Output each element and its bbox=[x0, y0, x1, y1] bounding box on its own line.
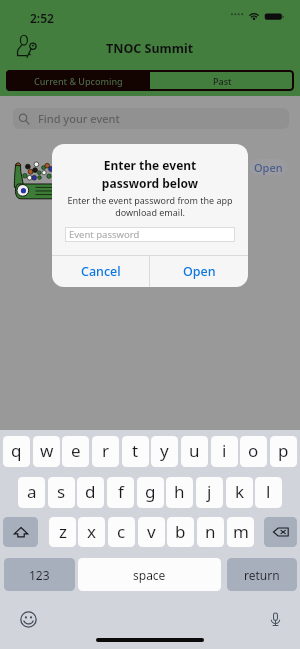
button[interactable]: p bbox=[270, 436, 297, 467]
staticText: c bbox=[117, 520, 126, 543]
staticText: TNOC Summit bbox=[106, 40, 194, 57]
staticText: Current & Upcoming bbox=[34, 75, 123, 87]
staticText: r bbox=[102, 439, 110, 462]
button[interactable]: Backspace bbox=[264, 517, 297, 547]
staticText: k bbox=[235, 480, 245, 503]
staticText: return bbox=[244, 567, 280, 583]
staticText: j bbox=[207, 480, 212, 503]
staticText: e bbox=[71, 439, 81, 462]
button[interactable]: m bbox=[227, 517, 254, 547]
staticText: n bbox=[205, 520, 216, 543]
button[interactable]: q bbox=[3, 436, 30, 467]
button[interactable]: x bbox=[78, 517, 105, 547]
button[interactable]: f bbox=[107, 477, 134, 508]
button[interactable]: w bbox=[33, 436, 60, 467]
button[interactable]: u bbox=[181, 436, 208, 467]
staticText: w bbox=[40, 439, 54, 462]
staticText: 123 bbox=[29, 567, 50, 583]
staticText: f bbox=[118, 480, 124, 503]
staticText: v bbox=[147, 520, 156, 543]
staticText: d bbox=[85, 480, 96, 503]
button[interactable]: Cancel bbox=[52, 256, 149, 287]
button[interactable]: Shift bbox=[3, 517, 38, 547]
staticText: q bbox=[11, 439, 22, 462]
button[interactable]: r bbox=[92, 436, 119, 467]
button[interactable]: Find your event bbox=[13, 108, 289, 129]
button[interactable]: n bbox=[197, 517, 224, 547]
staticText: Enter the event password from the app do… bbox=[57, 194, 243, 219]
button[interactable]: Return bbox=[227, 558, 297, 591]
button[interactable]: Open bbox=[150, 256, 248, 287]
staticText: Past bbox=[213, 75, 232, 87]
staticText: Event password bbox=[69, 228, 140, 241]
staticText: Find your event bbox=[38, 111, 120, 126]
staticText: l bbox=[266, 480, 271, 503]
button[interactable]: space bbox=[78, 558, 221, 591]
staticText: a bbox=[27, 480, 37, 503]
button[interactable]: a bbox=[18, 477, 45, 508]
button[interactable]: i bbox=[211, 436, 238, 467]
staticText: i bbox=[222, 439, 227, 462]
staticText: 2:52 bbox=[30, 10, 54, 26]
button[interactable]: h bbox=[166, 477, 193, 508]
staticText: Enter the event password below bbox=[52, 157, 248, 191]
button[interactable]: e bbox=[62, 436, 89, 467]
button[interactable]: Numbers and symbols bbox=[4, 558, 75, 591]
button[interactable]: Event password bbox=[65, 227, 235, 242]
staticText: Open bbox=[254, 160, 283, 175]
staticText: u bbox=[189, 439, 200, 462]
button[interactable]: g bbox=[137, 477, 164, 508]
staticText: t bbox=[132, 439, 139, 462]
staticText: Open bbox=[183, 263, 216, 280]
staticText: x bbox=[87, 520, 96, 543]
button[interactable]: o bbox=[240, 436, 267, 467]
button[interactable]: Account bbox=[16, 35, 38, 59]
button[interactable]: d bbox=[77, 477, 104, 508]
button[interactable]: Emoji keyboard bbox=[20, 611, 37, 628]
staticText: o bbox=[248, 439, 259, 462]
button[interactable]: y bbox=[151, 436, 178, 467]
button[interactable]: t bbox=[122, 436, 149, 467]
button[interactable]: Open bbox=[249, 159, 287, 175]
staticText: Cancel bbox=[81, 263, 121, 280]
button[interactable]: Past bbox=[150, 70, 294, 91]
staticText: p bbox=[278, 439, 289, 462]
button[interactable]: b bbox=[167, 517, 194, 547]
button[interactable]: s bbox=[48, 477, 75, 508]
button[interactable]: z bbox=[49, 517, 76, 547]
staticText: space bbox=[133, 567, 166, 583]
staticText: g bbox=[145, 480, 156, 503]
button[interactable]: j bbox=[196, 477, 223, 508]
button[interactable]: c bbox=[108, 517, 135, 547]
button[interactable]: Current & Upcoming bbox=[6, 70, 150, 91]
button[interactable]: k bbox=[226, 477, 253, 508]
staticText: z bbox=[59, 520, 67, 543]
staticText: h bbox=[174, 480, 185, 503]
staticText: b bbox=[175, 520, 186, 543]
button[interactable]: Dictation bbox=[268, 612, 283, 627]
button[interactable]: l bbox=[255, 477, 282, 508]
staticText: m bbox=[233, 520, 249, 543]
staticText: y bbox=[160, 439, 169, 462]
staticText: s bbox=[57, 480, 66, 503]
button[interactable]: v bbox=[138, 517, 165, 547]
